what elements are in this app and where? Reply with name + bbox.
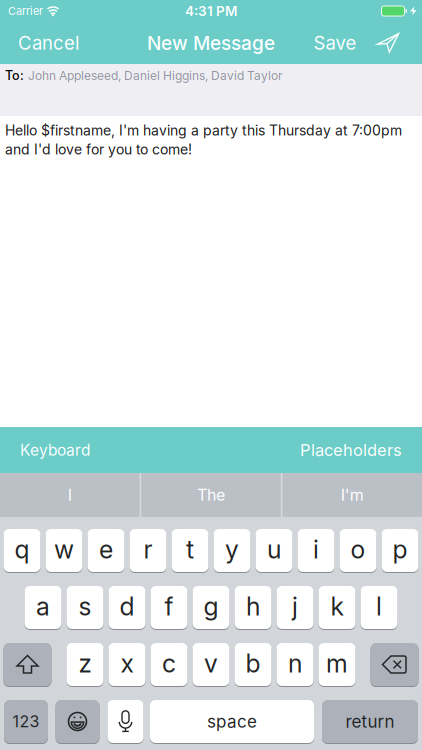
staticText: To: [5,68,24,83]
button[interactable]: d [108,586,145,629]
button[interactable]: x [108,643,145,686]
button[interactable]: n [276,643,313,686]
staticText: b [245,648,260,679]
staticText: k [330,591,343,622]
staticText: d [119,591,134,622]
button[interactable]: o [339,529,376,572]
staticText: v [204,648,218,679]
button[interactable]: f [150,586,187,629]
button[interactable]: l [360,586,397,629]
button[interactable]: p [381,529,418,572]
staticText: l [376,591,382,622]
button[interactable]: To: [0,64,422,116]
staticText: h [246,591,260,622]
staticText: return [345,711,394,732]
staticText: Hello $firstname, I'm having a party thi… [5,122,402,139]
button[interactable]: I [0,473,140,517]
button[interactable]: Keyboard [20,441,90,459]
staticText: s [78,591,91,622]
button[interactable]: w [45,529,82,572]
button[interactable]: Send [377,33,399,53]
staticText: g [203,591,218,622]
staticText: f [164,591,173,622]
button[interactable]: I'm [282,473,422,517]
staticText: Save [313,32,356,54]
staticText: 4:31 PM [185,3,237,19]
button[interactable]: Placeholders [300,440,402,460]
button[interactable]: The [141,473,281,517]
staticText: Keyboard [20,441,90,459]
button[interactable]: v [192,643,229,686]
staticText: q [14,534,29,565]
button[interactable]: k [318,586,355,629]
staticText: p [392,534,407,565]
staticText: z [78,648,91,679]
button[interactable]: m [318,643,355,686]
staticText: e [99,534,113,565]
button[interactable]: Dictation [107,700,143,743]
button[interactable]: Delete [370,643,418,686]
button[interactable]: z [66,643,103,686]
button[interactable]: Cancel [18,32,79,54]
staticText: Placeholders [300,440,402,460]
button[interactable]: y [213,529,250,572]
button[interactable]: Shift [3,643,51,686]
staticText: space [207,711,257,732]
button[interactable]: u [255,529,292,572]
staticText: m [326,648,348,679]
staticText: a [36,591,50,622]
button[interactable]: return [322,700,418,743]
staticText: n [288,648,302,679]
staticText: r [143,534,152,565]
staticText: o [350,534,365,565]
staticText: c [162,648,176,679]
button[interactable]: a [24,586,61,629]
staticText: y [225,534,239,565]
button[interactable]: j [276,586,313,629]
staticText: The [197,485,225,505]
staticText: I'm [341,485,364,505]
button[interactable]: space [150,700,314,743]
staticText: I [68,485,72,505]
button[interactable]: Save [313,32,356,54]
button[interactable]: Emoji [55,700,99,743]
button[interactable]: s [66,586,103,629]
staticText: u [267,534,281,565]
staticText: Cancel [18,32,79,54]
staticText: x [120,648,133,679]
button[interactable]: q [3,529,40,572]
button[interactable]: i [297,529,334,572]
button[interactable]: e [87,529,124,572]
button[interactable]: h [234,586,271,629]
staticText: New Message [147,31,275,54]
staticText: Carrier [8,4,43,18]
button[interactable]: g [192,586,229,629]
button[interactable]: c [150,643,187,686]
staticText: t [186,534,194,565]
staticText: John Appleseed, Daniel Higgins, David Ta… [28,68,283,83]
button[interactable]: t [171,529,208,572]
staticText: w [54,534,74,565]
staticText: j [292,591,298,622]
staticText: and I'd love for you to come! [5,141,192,158]
button[interactable]: 123 [4,700,48,743]
button[interactable]: b [234,643,271,686]
button[interactable]: r [129,529,166,572]
staticText: i [313,534,319,565]
staticText: 123 [12,712,39,731]
